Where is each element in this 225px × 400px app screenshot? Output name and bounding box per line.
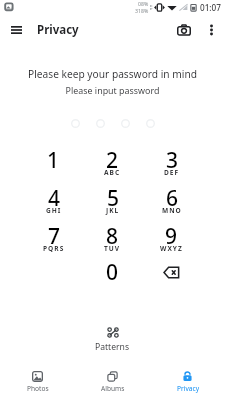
staticText: 3 — [166, 146, 179, 175]
staticText: TUV — [104, 244, 121, 253]
button[interactable]: Camera — [166, 15, 198, 45]
button[interactable]: Albums — [75, 364, 150, 400]
staticText: 8 — [106, 222, 119, 251]
staticText: ABC — [104, 168, 121, 177]
staticText: Privacy — [177, 384, 199, 393]
staticText: 1 — [47, 146, 60, 175]
staticText: WXYZ — [160, 244, 183, 253]
staticText: 7 — [48, 222, 61, 251]
staticText: Patterns — [95, 341, 130, 353]
staticText: 4 — [48, 184, 61, 213]
button[interactable]: 9 — [142, 222, 201, 260]
button[interactable]: 3 — [142, 146, 201, 184]
staticText: 5 — [107, 184, 120, 213]
staticText: 9 — [165, 222, 178, 251]
staticText: GHI — [46, 206, 62, 215]
staticText: Albums — [101, 384, 125, 393]
staticText: PQRS — [43, 244, 65, 253]
staticText: Please keep your password in mind — [0, 67, 225, 81]
staticText: Photos — [27, 384, 49, 393]
staticText: Privacy — [37, 22, 79, 38]
staticText: 6 — [166, 184, 179, 213]
button[interactable]: Backspace — [142, 260, 201, 298]
button[interactable]: More options — [198, 17, 224, 43]
button[interactable]: 6 — [142, 184, 201, 222]
staticText: DEF — [164, 168, 180, 177]
button[interactable]: 8 — [83, 222, 142, 260]
button[interactable]: Privacy — [150, 364, 225, 400]
button[interactable]: 5 — [83, 184, 142, 222]
button[interactable]: 0 — [83, 260, 142, 298]
button[interactable]: 7 — [24, 222, 83, 260]
staticText: 0 — [106, 258, 119, 287]
button[interactable]: 4 — [24, 184, 83, 222]
staticText: 08% — [138, 0, 149, 7]
staticText: JKL — [106, 206, 120, 215]
button[interactable]: 1 — [24, 146, 83, 184]
button[interactable]: Patterns — [83, 324, 142, 356]
button[interactable]: 2 — [83, 146, 142, 184]
staticText: 2 — [106, 146, 119, 175]
staticText: MNO — [162, 206, 182, 215]
staticText: 01:07 — [200, 2, 221, 13]
button[interactable]: Menu — [0, 15, 32, 45]
staticText: Please input password — [0, 84, 225, 96]
staticText: 318% — [135, 7, 149, 14]
button[interactable]: Photos — [0, 364, 75, 400]
